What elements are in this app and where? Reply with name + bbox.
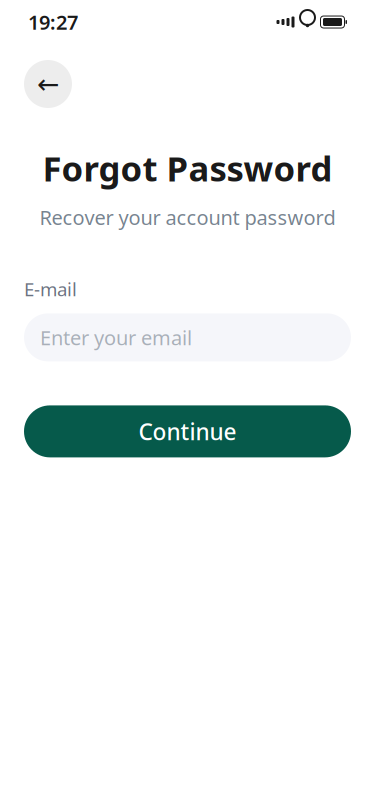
staticText: Recover your account password	[39, 204, 335, 231]
staticText: ←	[37, 69, 59, 99]
button[interactable]: Back	[24, 60, 72, 108]
staticText: Continue	[138, 416, 236, 446]
staticText: Forgot Password	[42, 145, 332, 191]
staticText: E-mail	[24, 277, 77, 301]
staticText: 19:27	[28, 9, 78, 35]
staticText: Enter your email	[40, 324, 192, 351]
button[interactable]: Enter your email	[24, 313, 351, 361]
button[interactable]: Continue	[24, 405, 351, 457]
